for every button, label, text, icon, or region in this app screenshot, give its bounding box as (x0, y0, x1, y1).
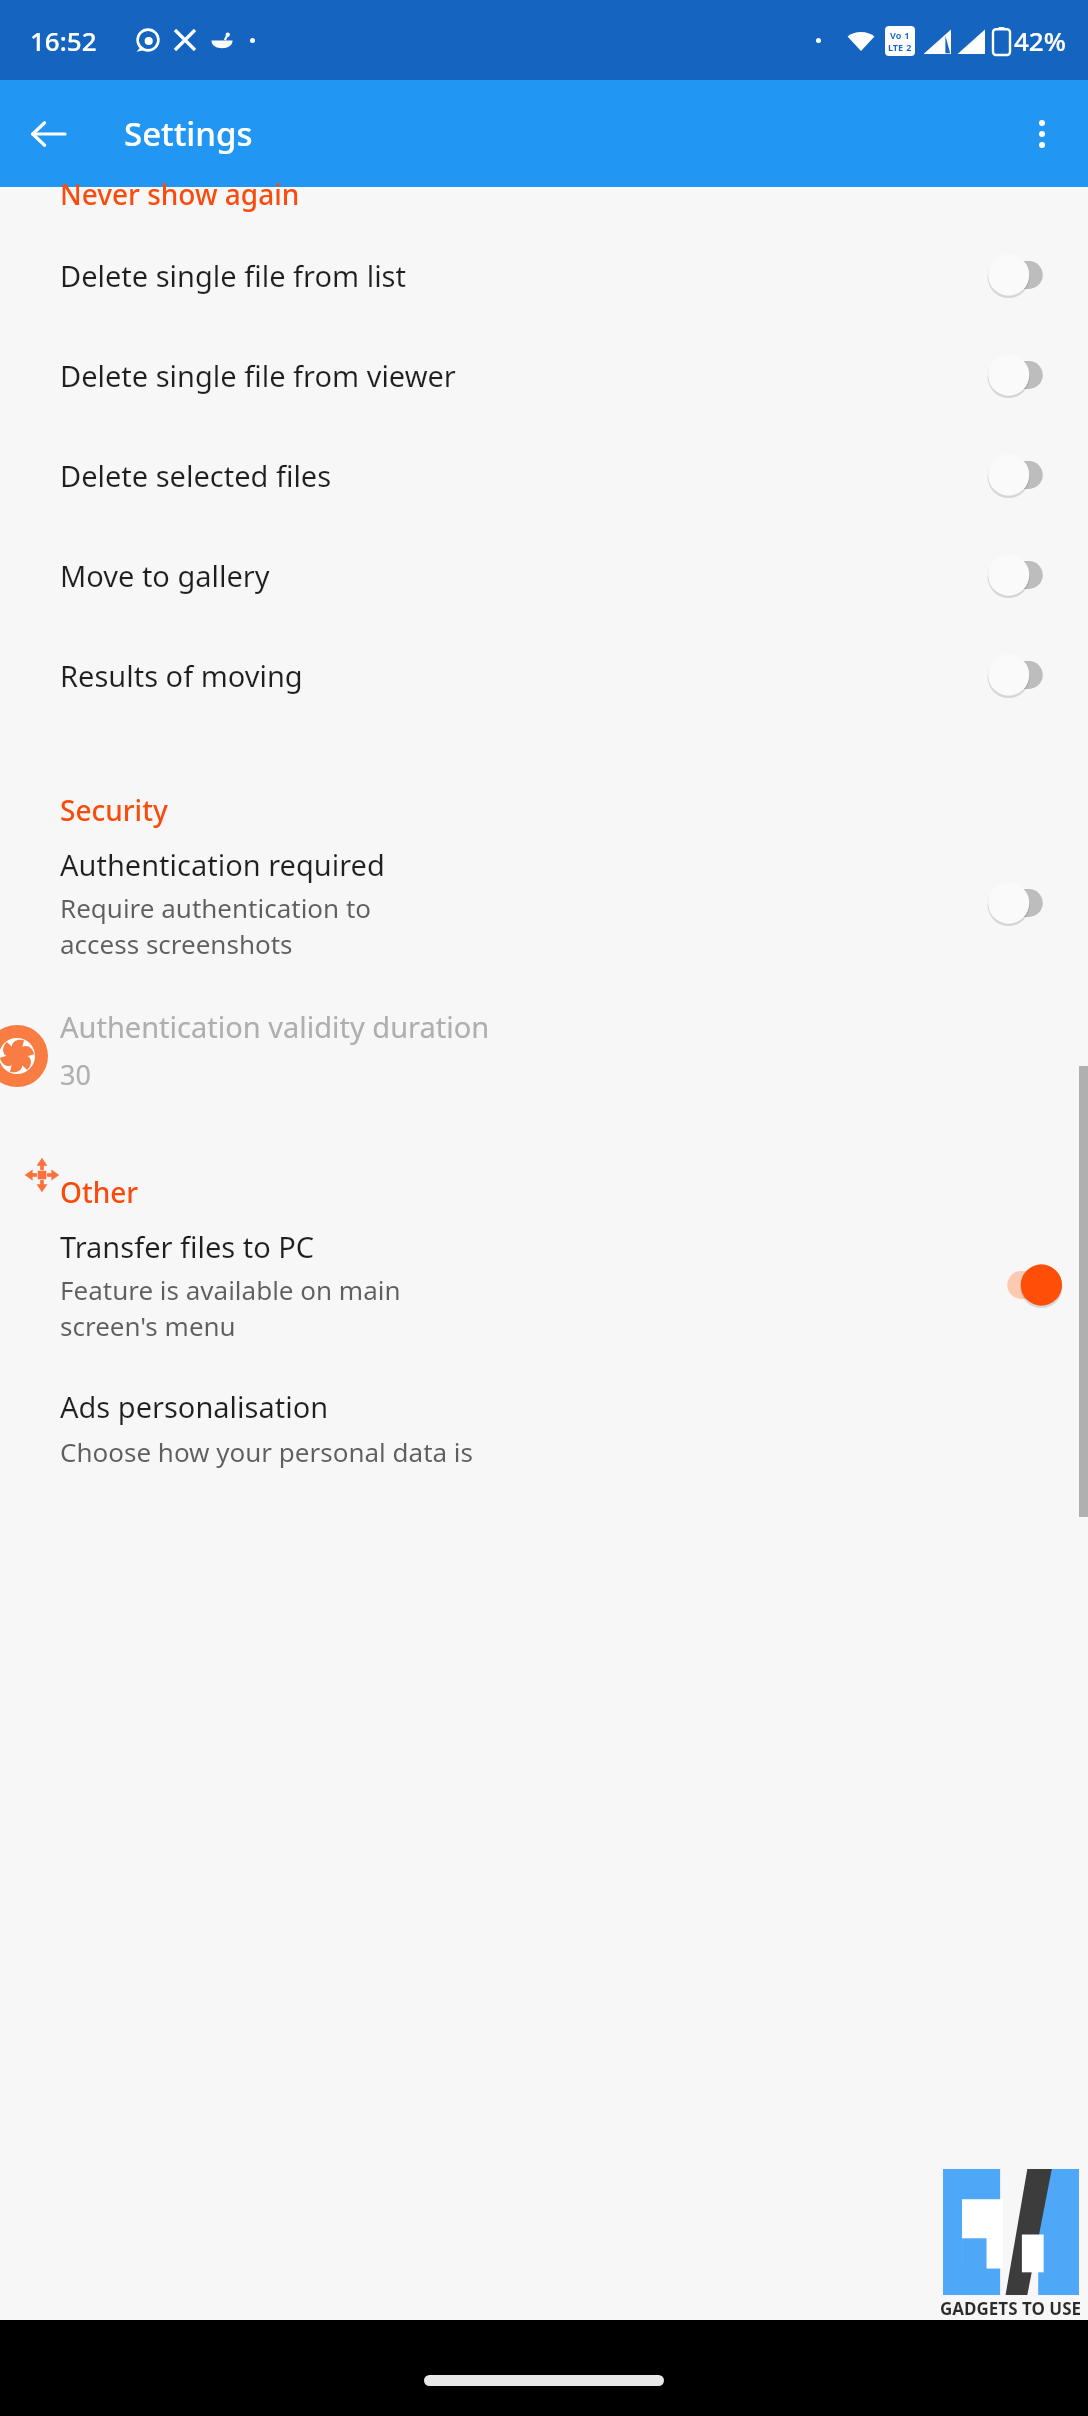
button[interactable]: Results of moving (0, 625, 1088, 725)
button[interactable]: Authentication validity duration (0, 977, 1088, 1119)
staticText: Authentication required (60, 845, 385, 884)
staticText: GADGETS TO USE (940, 2297, 1082, 2320)
staticText: LTE (888, 41, 904, 53)
button[interactable]: Move (20, 1153, 64, 1197)
staticText: Delete single file from list (60, 256, 406, 295)
button[interactable]: Ads personalisation (0, 1359, 1088, 1469)
staticText: Results of moving (60, 656, 303, 695)
button[interactable] (988, 651, 1062, 699)
staticText: Move to gallery (60, 556, 270, 595)
button[interactable]: Delete selected files (0, 425, 1088, 525)
button[interactable]: Delete single file from viewer (0, 325, 1088, 425)
staticText: 42% (1014, 23, 1066, 58)
button[interactable]: Delete single file from list (0, 225, 1088, 325)
staticText: Transfer files to PC (60, 1227, 315, 1266)
button[interactable] (988, 1261, 1062, 1309)
staticText: Delete single file from viewer (60, 356, 456, 395)
staticText: 16:52 (30, 23, 97, 58)
staticText: Security (60, 791, 168, 829)
staticText: Choose how your personal data is (60, 1434, 474, 1469)
button[interactable] (988, 879, 1062, 927)
button[interactable]: Authentication required (0, 829, 1088, 977)
button[interactable]: Back (16, 102, 80, 166)
button[interactable]: Transfer files to PC (0, 1211, 1088, 1359)
staticText: 1 (902, 29, 910, 41)
staticText: Other (60, 1173, 139, 1211)
staticText: Authentication validity duration (60, 1007, 490, 1046)
staticText: 2 (904, 41, 912, 53)
button[interactable] (988, 551, 1062, 599)
staticText: Feature is available on main screen's me… (60, 1272, 401, 1344)
button[interactable]: Screenshot shutter (0, 1025, 48, 1087)
button[interactable] (988, 451, 1062, 499)
staticText: Delete selected files (60, 456, 332, 495)
button[interactable]: More options (1010, 102, 1074, 166)
staticText: Vo (890, 29, 902, 41)
staticText: Settings (124, 111, 253, 156)
staticText: Require authentication to access screens… (60, 890, 372, 962)
button[interactable] (988, 351, 1062, 399)
staticText: Never show again (60, 175, 300, 213)
button[interactable]: Move to gallery (0, 525, 1088, 625)
staticText: 30 (60, 1056, 91, 1093)
staticText: Ads personalisation (60, 1387, 329, 1426)
button[interactable] (988, 251, 1062, 299)
